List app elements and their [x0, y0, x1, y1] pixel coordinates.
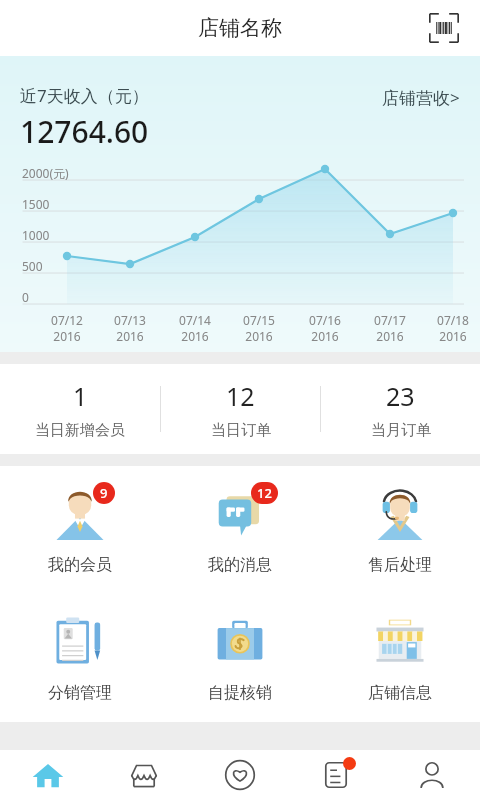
staticText: 2016 [376, 328, 404, 344]
staticText: 12 [257, 484, 272, 502]
staticText: 当日新增会员 [35, 421, 125, 440]
button[interactable]: 自提核销 [160, 594, 320, 722]
staticText: 2016 [53, 328, 81, 344]
staticText: 1500 [22, 196, 50, 212]
staticText: 店铺信息 [368, 683, 432, 703]
button[interactable]: 扫码 [422, 6, 466, 50]
staticText: 近7天收入（元） [20, 84, 149, 107]
staticText: 07/16 [309, 312, 341, 328]
staticText: 售后处理 [368, 555, 432, 575]
staticText: 2016 [311, 328, 339, 344]
button[interactable]: 收藏 [192, 750, 288, 800]
staticText: 店铺名称 [198, 15, 282, 41]
button[interactable]: 订单 [288, 750, 384, 800]
staticText: 23 [386, 379, 415, 413]
staticText: 分销管理 [48, 683, 112, 703]
staticText: 我的消息 [208, 555, 272, 575]
button[interactable]: 1 [0, 364, 160, 454]
staticText: 12 [226, 379, 255, 413]
staticText: 07/15 [243, 312, 275, 328]
staticText: 当月订单 [371, 421, 431, 440]
staticText: 07/17 [374, 312, 406, 328]
staticText: 07/14 [179, 312, 211, 328]
button[interactable]: 售后处理 [320, 466, 480, 594]
staticText: 2016 [181, 328, 209, 344]
staticText: 1 [73, 379, 88, 413]
staticText: 500 [22, 258, 43, 274]
button[interactable]: 店铺 [96, 750, 192, 800]
staticText: 2000(元) [22, 165, 69, 181]
staticText: 2016 [116, 328, 144, 344]
staticText: 07/18 [437, 312, 469, 328]
staticText: 2016 [439, 328, 467, 344]
staticText: 1000 [22, 227, 50, 243]
button[interactable]: 首页 [0, 750, 96, 800]
staticText: 店铺营收> [382, 86, 460, 109]
button[interactable]: 我的 [384, 750, 480, 800]
staticText: 07/12 [51, 312, 83, 328]
button[interactable]: 9 [0, 466, 160, 594]
button[interactable]: 分销管理 [0, 594, 160, 722]
staticText: 2016 [245, 328, 273, 344]
staticText: 12764.60 [20, 111, 149, 152]
staticText: 自提核销 [208, 683, 272, 703]
staticText: 我的会员 [48, 555, 112, 575]
button[interactable]: 12 [161, 364, 320, 454]
button[interactable]: 12 [160, 466, 320, 594]
staticText: 07/13 [114, 312, 146, 328]
staticText: 当日订单 [211, 421, 271, 440]
button[interactable]: 店铺信息 [320, 594, 480, 722]
button[interactable]: 23 [321, 364, 480, 454]
button[interactable]: 店铺营收> [382, 84, 460, 109]
staticText: 9 [100, 484, 108, 502]
staticText: 0 [22, 289, 29, 305]
